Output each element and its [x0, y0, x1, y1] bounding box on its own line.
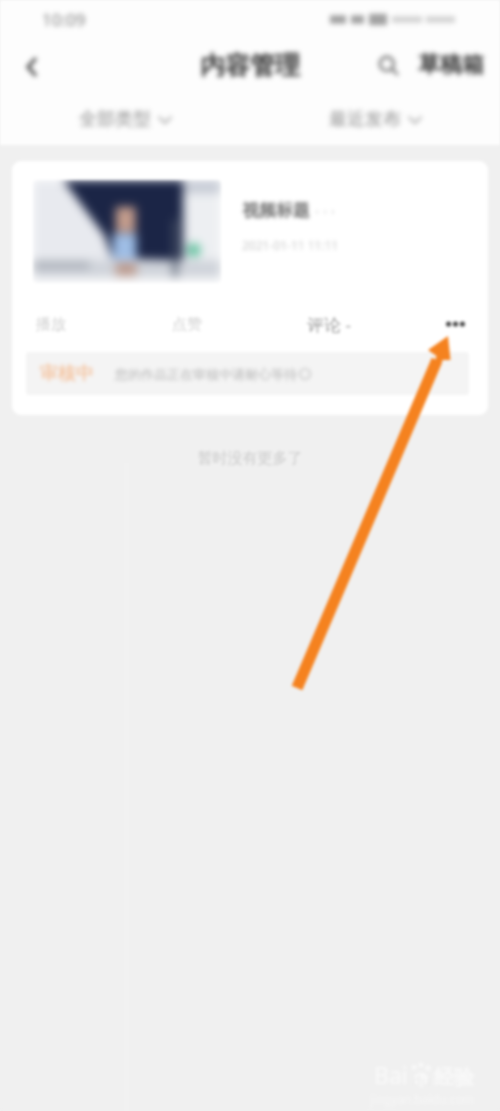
staticText: 视频标题: [242, 200, 310, 221]
button[interactable]: 最近发布: [250, 95, 500, 143]
staticText: 10:09: [42, 8, 86, 31]
staticText: 审核中: [40, 362, 94, 385]
staticText: 点赞: [172, 315, 202, 334]
button[interactable]: Back: [10, 45, 54, 89]
button[interactable]: 视频标题: [12, 161, 488, 415]
staticText: 播放: [36, 315, 66, 334]
staticText: 最近发布: [329, 108, 401, 131]
staticText: 暂时没有更多了: [0, 449, 500, 468]
button[interactable]: 全部类型: [0, 95, 250, 143]
button[interactable]: More options: [436, 310, 474, 338]
staticText: 您的作品正在审核中请耐心等待: [115, 366, 297, 382]
button[interactable]: Search: [366, 43, 410, 87]
staticText: 2021-01-11 11:11: [242, 237, 339, 253]
staticText: 内容管理: [200, 50, 300, 81]
staticText: 草稿箱: [418, 51, 484, 79]
staticText: 全部类型: [79, 108, 151, 131]
button[interactable]: 草稿箱: [410, 41, 500, 89]
staticText: 评论 -: [307, 313, 351, 336]
